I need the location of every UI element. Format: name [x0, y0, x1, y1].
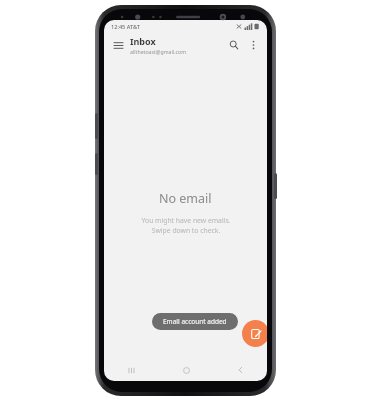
button[interactable]: Open navigation drawer: [110, 37, 126, 53]
staticText: You might have new emails. Swipe down to…: [134, 216, 238, 235]
button[interactable]: Recent apps: [104, 359, 159, 381]
staticText: Email account added: [163, 317, 227, 326]
staticText: 12:45 AT&T: [111, 23, 141, 31]
button[interactable]: Email account added: [152, 313, 238, 330]
button[interactable]: More options: [245, 37, 261, 53]
staticText: Inbox: [130, 35, 156, 47]
staticText: allthetoast@gmail.com: [130, 48, 187, 55]
button[interactable]: Search: [225, 36, 243, 54]
button[interactable]: Compose: [242, 320, 267, 347]
button[interactable]: Home: [159, 359, 213, 381]
button[interactable]: Back: [213, 359, 267, 381]
staticText: No email: [159, 190, 212, 207]
